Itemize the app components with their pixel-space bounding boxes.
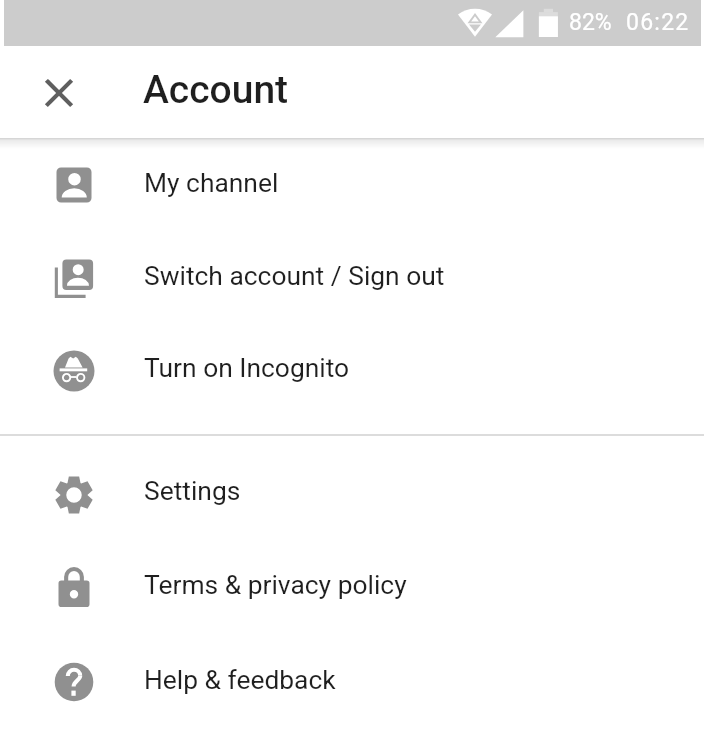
staticText: Switch account / Sign out (144, 261, 445, 292)
button[interactable]: Help & feedback (0, 634, 704, 727)
staticText: Terms & privacy policy (144, 570, 407, 601)
button[interactable]: Turn on Incognito (0, 322, 704, 415)
staticText: 82% (569, 9, 612, 36)
button[interactable]: Settings (0, 445, 704, 538)
button[interactable]: My channel (0, 137, 704, 230)
staticText: Help & feedback (144, 665, 336, 696)
staticText: Settings (144, 476, 241, 507)
staticText: 06:22 (626, 9, 690, 36)
button[interactable]: Terms & privacy policy (0, 539, 704, 632)
staticText: My channel (144, 168, 279, 199)
button[interactable]: Switch account / Sign out (0, 230, 704, 323)
staticText: Turn on Incognito (144, 353, 350, 384)
staticText: Account (143, 67, 289, 113)
button[interactable]: Close (30, 64, 88, 122)
